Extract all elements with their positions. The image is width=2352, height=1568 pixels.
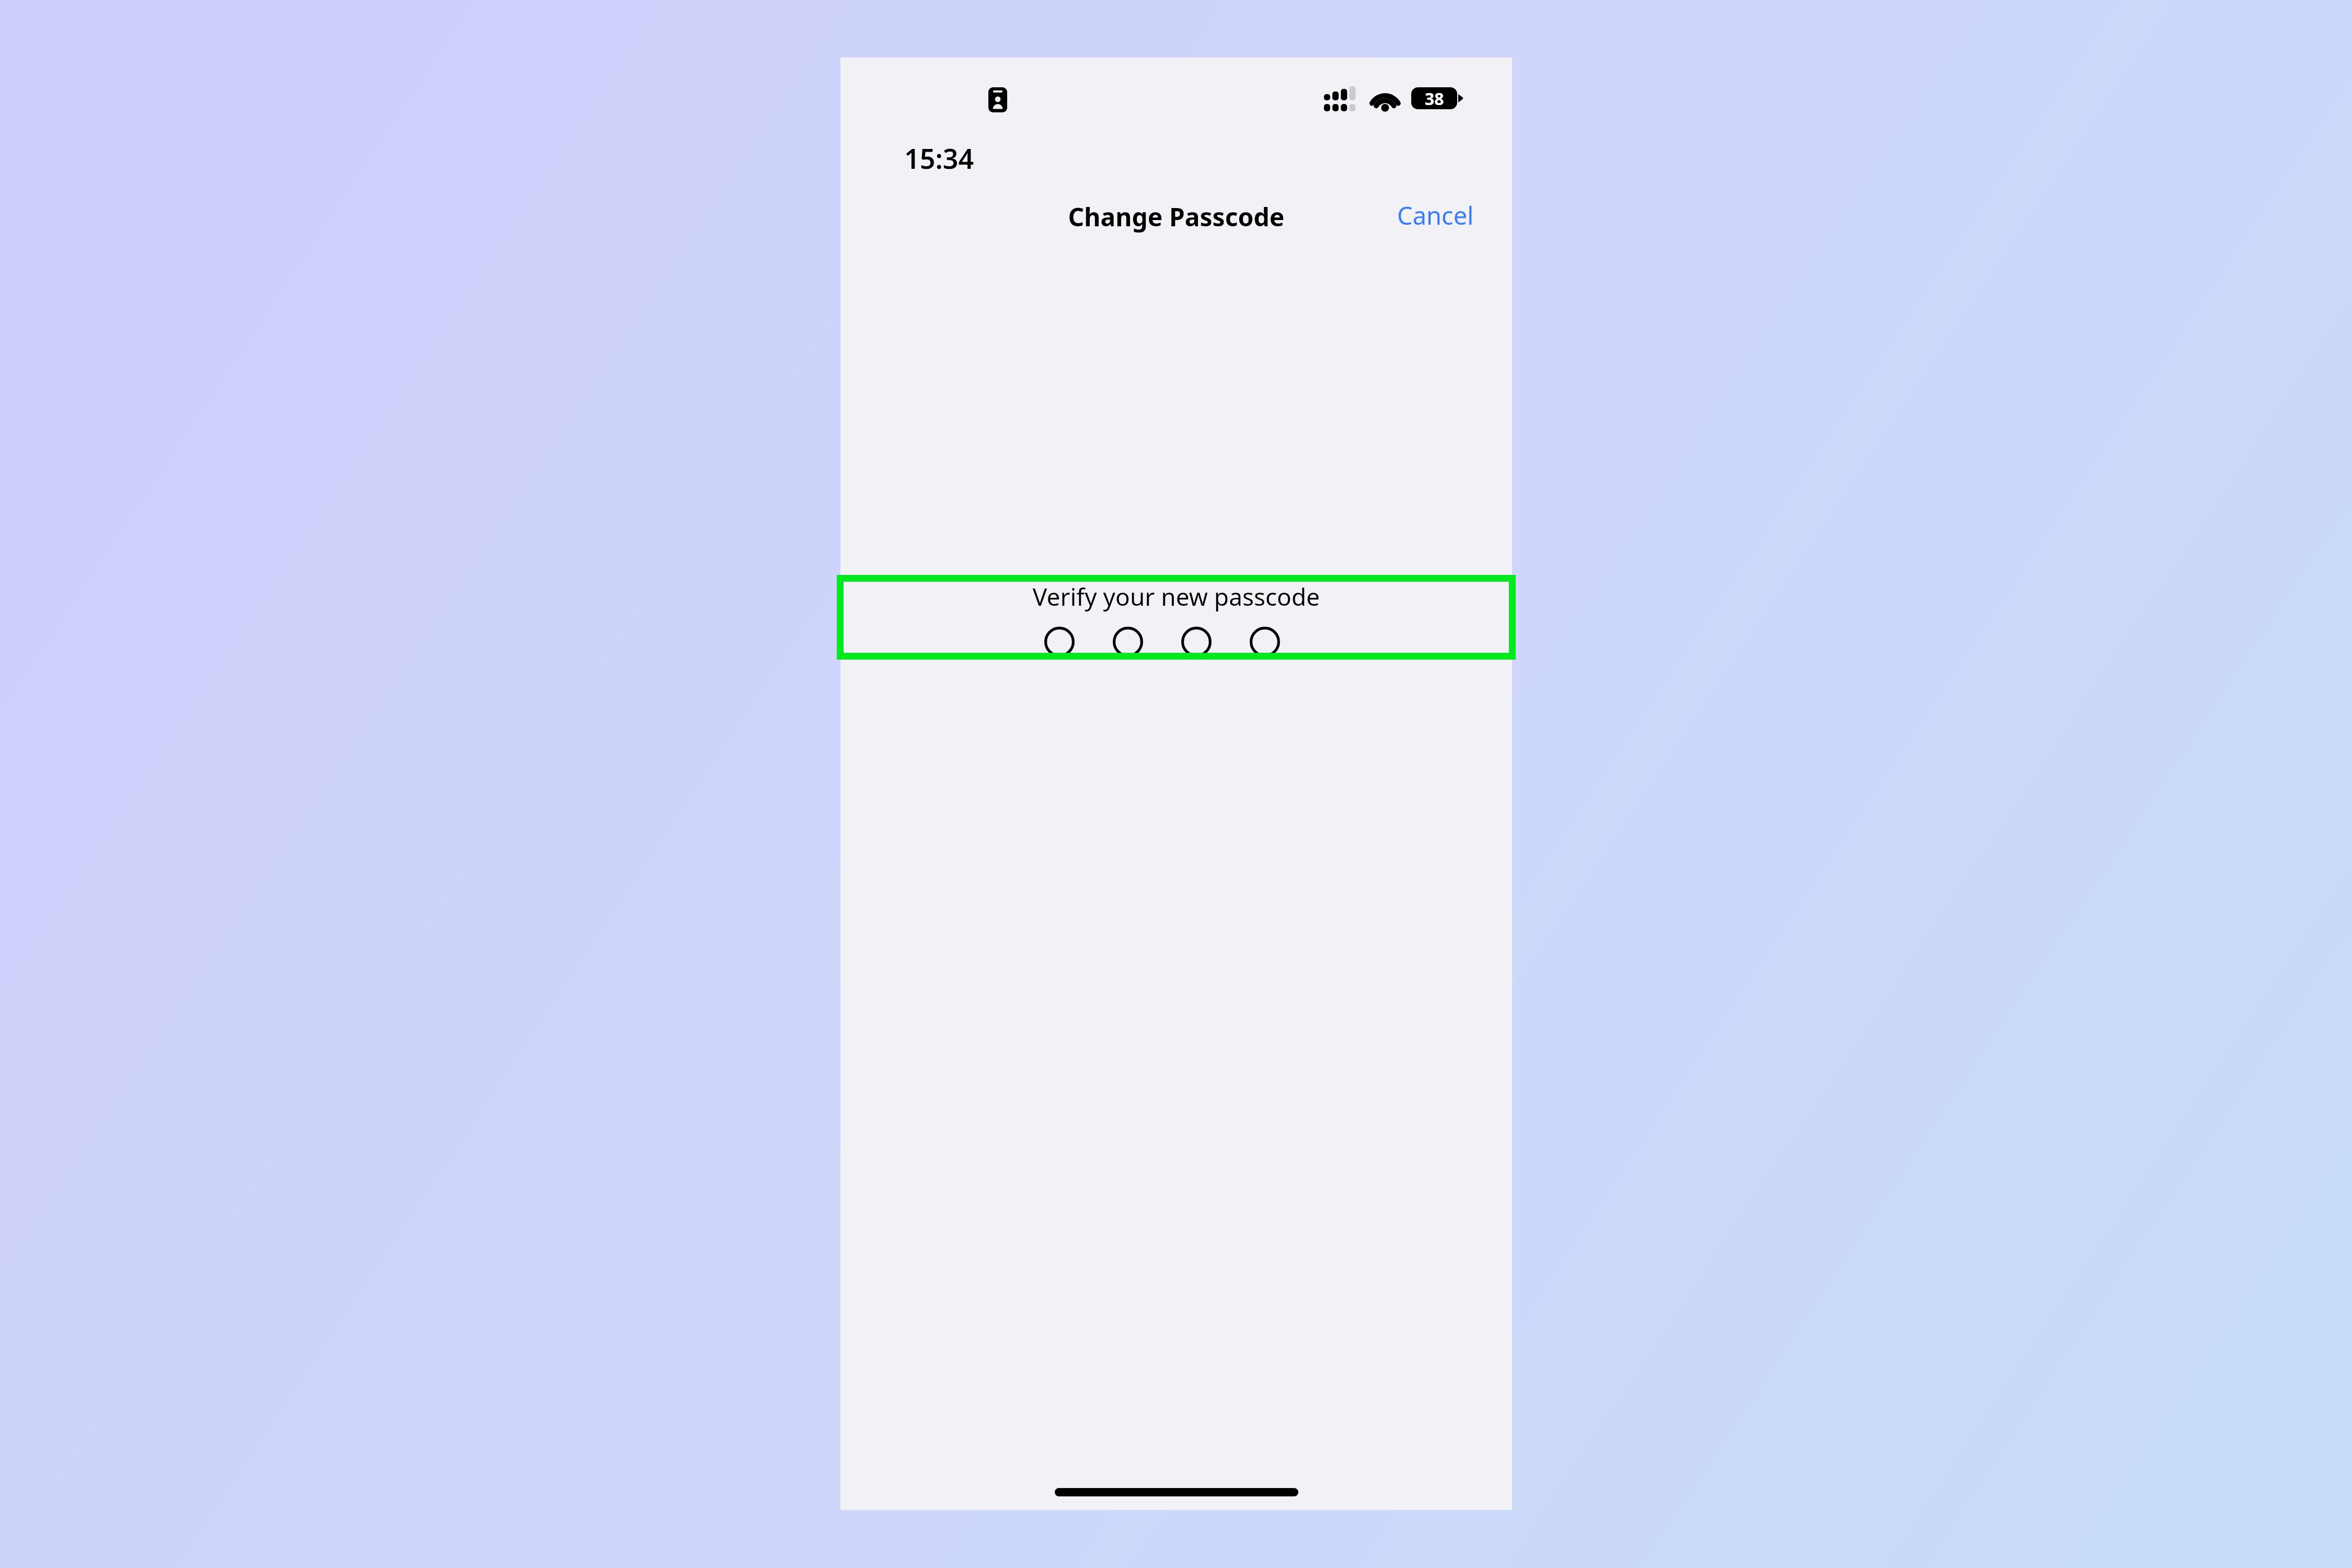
staticText: 38	[1425, 87, 1444, 109]
button[interactable]: Cancel	[1392, 194, 1479, 236]
staticText: Change Passcode	[840, 200, 1512, 234]
staticText: Verify your new passcode	[840, 580, 1512, 613]
button[interactable]: Passcode entry field	[1044, 597, 1308, 687]
staticText: Cancel	[1397, 199, 1474, 232]
staticText: 15:34	[904, 140, 974, 177]
